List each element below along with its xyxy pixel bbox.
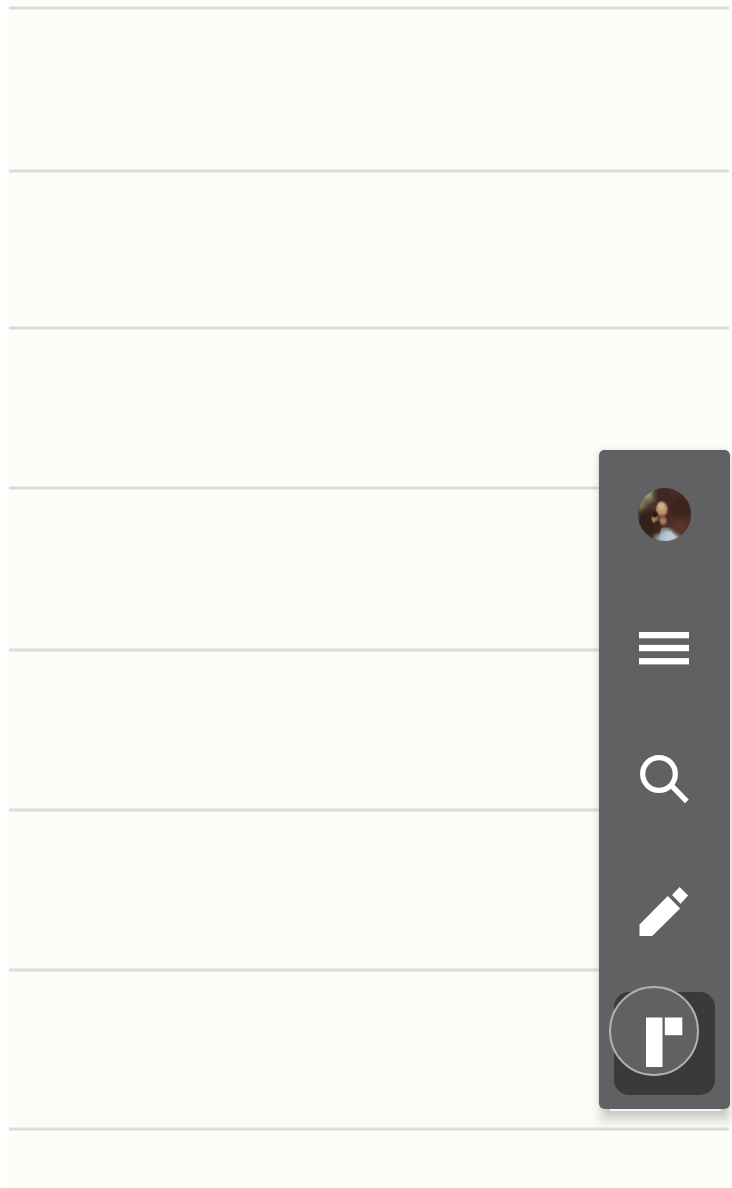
button[interactable]: Menu xyxy=(630,614,698,682)
button[interactable]: Compose xyxy=(630,878,698,946)
button[interactable]: Account xyxy=(638,488,691,541)
button[interactable]: Search xyxy=(630,740,698,808)
button[interactable]: Reply xyxy=(614,992,715,1095)
